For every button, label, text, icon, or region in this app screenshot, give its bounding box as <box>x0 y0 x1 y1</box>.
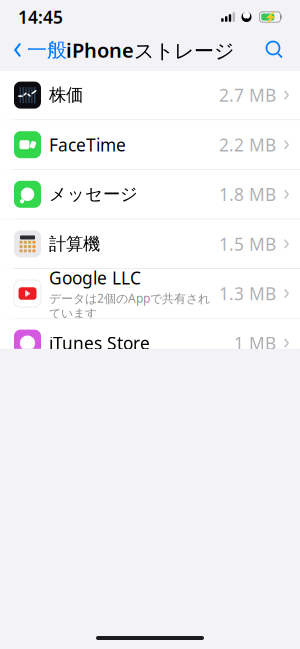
staticText: iTunes Store <box>49 332 150 355</box>
staticText: メッセージ <box>49 184 138 205</box>
staticText: iPhoneストレージ <box>66 37 234 63</box>
staticText: 株価 <box>49 84 83 106</box>
button[interactable]: 株価 <box>0 71 300 120</box>
button[interactable]: 一般 <box>10 32 69 68</box>
button[interactable]: メッセージ <box>0 170 300 219</box>
staticText: 1.5 MB <box>219 232 276 255</box>
staticText: Google LLC <box>49 266 141 289</box>
staticText: ⚡ <box>263 11 276 23</box>
staticText: 2.7 MB <box>219 84 276 107</box>
staticText: 1.3 MB <box>219 282 276 305</box>
staticText: 14:45 <box>18 5 63 28</box>
button[interactable]: Google LLC <box>0 269 300 319</box>
button[interactable]: iTunes Store <box>0 319 300 368</box>
button[interactable]: 検索 <box>260 35 290 65</box>
staticText: 1.8 MB <box>219 183 276 206</box>
staticText: 2.2 MB <box>219 133 276 156</box>
button[interactable]: FaceTime <box>0 120 300 170</box>
staticText: 1 MB <box>234 332 276 355</box>
staticText: 一般 <box>27 38 67 62</box>
staticText: 計算機 <box>49 233 100 255</box>
staticText: FaceTime <box>49 133 126 156</box>
button[interactable]: 計算機 <box>0 219 300 269</box>
staticText: データは2個のAppで共有されています <box>49 290 210 321</box>
